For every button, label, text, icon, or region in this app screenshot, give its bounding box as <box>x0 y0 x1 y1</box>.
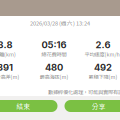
staticText: 距離(km) <box>0 50 16 58</box>
staticText: 總花費時間 <box>41 50 66 58</box>
staticText: 391 <box>0 62 13 73</box>
staticText: 平均速度(km/h) <box>84 50 120 58</box>
staticText: 2.6 <box>95 39 110 50</box>
button[interactable]: 分享 <box>64 100 120 112</box>
staticText: 492 <box>94 62 112 73</box>
staticText: 累積下降(m) <box>88 73 117 81</box>
staticText: 05:16 <box>41 39 66 50</box>
button[interactable]: 結束 <box>0 100 57 112</box>
staticText: 最高海拔(m) <box>39 73 68 81</box>
staticText: 爬升高差(m) <box>0 73 19 81</box>
staticText: 480 <box>45 62 63 73</box>
staticText: 數據經優化處理，可能與實際有誤差 <box>48 88 120 96</box>
staticText: 3.8 <box>0 39 12 50</box>
staticText: 分享 <box>92 101 106 111</box>
staticText: 結束 <box>16 101 30 111</box>
staticText: 2026/03/28 (週六) 13:24 <box>30 19 90 27</box>
